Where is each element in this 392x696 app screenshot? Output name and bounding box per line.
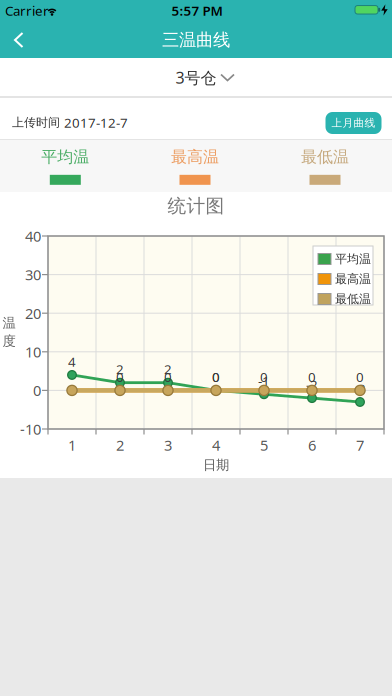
staticText: 最低温: [335, 292, 371, 306]
staticText: 4: [68, 353, 76, 370]
staticText: 三温曲线: [162, 29, 230, 51]
staticText: 度: [2, 333, 15, 349]
staticText: 2: [116, 435, 124, 455]
staticText: 5:57 PM: [171, 2, 222, 19]
staticText: 0: [164, 368, 172, 386]
staticText: Carrier: [5, 2, 49, 19]
staticText: -2: [306, 376, 318, 393]
staticText: 5: [260, 435, 268, 455]
staticText: 3号仓: [175, 67, 216, 88]
staticText: 6: [308, 435, 316, 455]
staticText: 上传时间: [12, 115, 60, 130]
staticText: 2: [116, 360, 124, 378]
staticText: 温: [2, 315, 15, 331]
staticText: 平均温: [41, 147, 89, 167]
staticText: 2: [164, 360, 172, 378]
staticText: 0: [33, 381, 41, 400]
staticText: 统计图: [167, 194, 224, 217]
button[interactable]: 最高温: [135, 140, 255, 192]
staticText: -10: [20, 419, 41, 439]
staticText: -1: [258, 372, 270, 390]
staticText: 0: [116, 368, 124, 386]
staticText: 平均温: [335, 252, 371, 266]
staticText: 0: [356, 368, 364, 386]
staticText: 40: [25, 226, 41, 246]
staticText: 30: [25, 265, 41, 284]
staticText: 最低温: [301, 147, 349, 167]
staticText: 0: [308, 368, 316, 386]
staticText: 20: [25, 303, 41, 323]
staticText: 0: [260, 368, 268, 386]
staticText: 日期: [203, 457, 229, 473]
staticText: 4: [212, 435, 220, 455]
button[interactable]: 上月曲线: [325, 112, 381, 134]
staticText: 上月曲线: [331, 116, 375, 129]
staticText: 1: [68, 435, 76, 455]
staticText: 最高温: [335, 272, 371, 286]
button[interactable]: 3号仓: [0, 58, 392, 96]
button[interactable]: 平均温: [5, 140, 125, 192]
button[interactable]: 最低温: [265, 140, 385, 192]
staticText: 3: [164, 435, 172, 455]
staticText: -3: [354, 380, 366, 397]
staticText: 2017-12-7: [64, 114, 128, 131]
staticText: 0: [212, 368, 220, 386]
staticText: 最高温: [171, 147, 219, 167]
staticText: 10: [25, 342, 41, 362]
button[interactable]: Back: [0, 22, 44, 58]
staticText: 0: [212, 368, 220, 386]
staticText: 7: [356, 435, 364, 455]
